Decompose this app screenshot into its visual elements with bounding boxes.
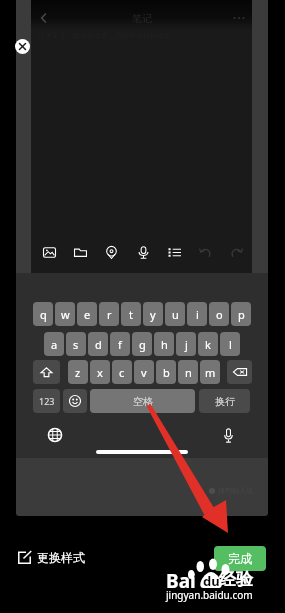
button[interactable]: g — [132, 332, 152, 356]
button[interactable]: b — [156, 360, 176, 384]
button[interactable]: i — [187, 302, 207, 326]
button[interactable]: Record audio — [132, 241, 154, 263]
button[interactable]: u — [165, 302, 185, 326]
button[interactable]: l — [220, 332, 240, 356]
staticText: 换行 — [215, 395, 235, 408]
button[interactable]: Back — [34, 8, 54, 28]
staticText: g — [139, 337, 146, 352]
button[interactable]: Insert image — [38, 241, 60, 263]
staticText: c — [119, 365, 125, 380]
button[interactable]: h — [154, 332, 174, 356]
button[interactable]: d — [88, 332, 108, 356]
button[interactable]: Shift — [33, 360, 60, 384]
button[interactable]: o — [209, 302, 229, 326]
staticText: 空格 — [133, 395, 153, 408]
staticText: 完成 — [228, 551, 252, 566]
button[interactable]: 更换样式 — [18, 542, 85, 572]
button[interactable]: Backspace — [227, 360, 252, 384]
staticText: 笔记 — [132, 12, 152, 25]
staticText: z — [75, 365, 81, 380]
staticText: x — [97, 365, 103, 380]
button[interactable]: Checklist — [163, 241, 185, 263]
staticText: o — [216, 307, 223, 322]
button[interactable]: y — [143, 302, 163, 326]
staticText: n — [185, 365, 192, 380]
staticText: u — [172, 307, 179, 322]
button[interactable]: 空格 — [90, 389, 195, 413]
button[interactable]: t — [121, 302, 141, 326]
button[interactable]: Attach file — [69, 241, 91, 263]
staticText: r — [107, 307, 112, 322]
button[interactable]: Emoji — [63, 389, 87, 413]
staticText: q — [40, 307, 47, 322]
button[interactable]: 完成 — [214, 546, 266, 571]
button[interactable]: q — [33, 302, 53, 326]
staticText: p — [238, 307, 245, 322]
staticText: a — [51, 337, 58, 352]
button[interactable]: Undo — [194, 241, 216, 263]
button[interactable]: w — [55, 302, 75, 326]
staticText: l — [229, 337, 232, 352]
staticText: i — [196, 307, 199, 322]
staticText: 经验 — [219, 569, 253, 590]
staticText: k — [205, 337, 211, 352]
staticText: y — [150, 307, 156, 322]
button[interactable]: a — [44, 332, 64, 356]
button[interactable]: j — [176, 332, 196, 356]
staticText: b — [163, 365, 170, 380]
staticText: t — [129, 307, 133, 322]
button[interactable]: p — [231, 302, 251, 326]
button[interactable]: Switch language — [44, 424, 66, 446]
button[interactable]: f — [110, 332, 130, 356]
button[interactable]: Voice input — [217, 424, 239, 446]
button[interactable]: e — [77, 302, 97, 326]
button[interactable]: More options — [229, 8, 249, 28]
staticText: v — [141, 365, 147, 380]
button[interactable]: c — [112, 360, 132, 384]
button[interactable]: Redo — [225, 241, 247, 263]
staticText: 更换样式 — [37, 550, 85, 565]
staticText: f — [118, 337, 122, 352]
button[interactable]: Location — [100, 241, 122, 263]
staticText: Bai — [166, 568, 196, 594]
button[interactable]: z — [68, 360, 88, 384]
staticText: 123 — [39, 395, 55, 407]
button[interactable]: v — [134, 360, 154, 384]
button[interactable]: 123 — [33, 389, 60, 413]
button[interactable]: x — [90, 360, 110, 384]
staticText: d — [95, 337, 102, 352]
button[interactable]: Close — [15, 39, 30, 54]
staticText: h — [161, 337, 168, 352]
staticText: du — [203, 572, 220, 590]
staticText: j — [185, 337, 188, 352]
staticText: w — [61, 307, 70, 322]
button[interactable]: r — [99, 302, 119, 326]
staticText: e — [84, 307, 91, 322]
button[interactable]: k — [198, 332, 218, 356]
button[interactable]: m — [200, 360, 220, 384]
button[interactable]: s — [66, 332, 86, 356]
button[interactable]: 换行 — [199, 389, 250, 413]
staticText: jingyan.baidu.com — [166, 588, 253, 602]
staticText: m — [205, 365, 216, 380]
staticText: s — [73, 337, 79, 352]
button[interactable]: n — [178, 360, 198, 384]
